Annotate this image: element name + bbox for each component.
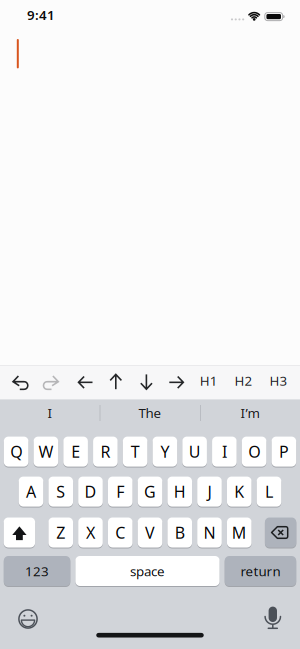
button[interactable]: Space [75,556,220,586]
staticText: The [138,404,161,422]
staticText: S [56,481,65,502]
button[interactable]: I’m [202,399,298,427]
button[interactable]: Emoji [16,607,40,631]
staticText: I [222,441,227,462]
button[interactable]: I [2,399,98,427]
staticText: F [116,481,124,502]
staticText: D [84,481,96,502]
button[interactable]: Move up [106,372,126,392]
button[interactable]: J [197,477,222,507]
button[interactable]: Move down [136,372,156,392]
staticText: Q [10,441,22,462]
button[interactable]: G [138,477,162,507]
staticText: B [175,522,185,543]
staticText: space [130,562,165,580]
button[interactable]: K [227,477,251,507]
button[interactable]: U [182,437,207,467]
staticText: K [234,481,244,502]
button[interactable]: B [167,517,192,547]
button[interactable]: A [19,477,43,507]
button[interactable]: The [102,399,198,427]
button[interactable]: E [63,437,88,467]
staticText: I [47,404,52,422]
staticText: H3 [269,372,287,389]
staticText: Z [56,522,65,543]
staticText: C [115,522,125,543]
button[interactable]: X [78,517,103,547]
staticText: J [207,481,211,502]
button[interactable]: R [93,437,118,467]
staticText: O [248,441,260,462]
button[interactable]: H [167,477,192,507]
button[interactable]: Undo [10,372,30,392]
button[interactable]: Move right [166,372,186,392]
staticText: E [71,441,80,462]
button[interactable]: Dictate [261,606,285,630]
staticText: H1 [200,372,218,389]
button[interactable]: Z [48,517,73,547]
button[interactable]: V [138,517,162,547]
button[interactable]: Numbers [4,556,70,586]
button[interactable]: I [212,437,237,467]
staticText: W [38,441,53,462]
staticText: A [26,481,36,502]
button[interactable]: Delete [265,517,296,547]
button[interactable]: O [242,437,266,467]
staticText: G [144,481,156,502]
button[interactable]: Redo [41,372,61,392]
staticText: T [131,441,140,462]
staticText: U [189,441,201,462]
staticText: V [145,522,155,543]
staticText: I’m [240,404,259,422]
staticText: L [265,481,273,502]
button[interactable]: F [108,477,133,507]
button[interactable]: S [48,477,73,507]
button[interactable]: Return [225,556,296,586]
button[interactable]: Y [153,437,177,467]
button[interactable]: D [78,477,103,507]
staticText: Y [160,441,169,462]
button[interactable]: Q [4,437,28,467]
staticText: N [203,522,215,543]
staticText: M [232,522,247,543]
staticText: 123 [25,562,49,580]
button[interactable]: P [272,437,296,467]
button[interactable]: H1 [196,370,222,392]
button[interactable]: T [123,437,147,467]
button[interactable]: M [227,517,251,547]
button[interactable]: H3 [265,370,291,392]
button[interactable]: N [197,517,222,547]
staticText: X [86,522,95,543]
staticText: P [279,441,289,462]
staticText: R [100,441,110,462]
staticText: H2 [235,372,253,389]
staticText: 9:41 [27,6,55,24]
button[interactable]: Move left [75,372,95,392]
staticText: return [240,562,280,580]
button[interactable]: C [108,517,133,547]
button[interactable]: W [34,437,58,467]
button[interactable]: H2 [231,370,257,392]
button[interactable]: L [257,477,281,507]
button[interactable]: Shift [4,517,35,547]
staticText: H [174,481,186,502]
